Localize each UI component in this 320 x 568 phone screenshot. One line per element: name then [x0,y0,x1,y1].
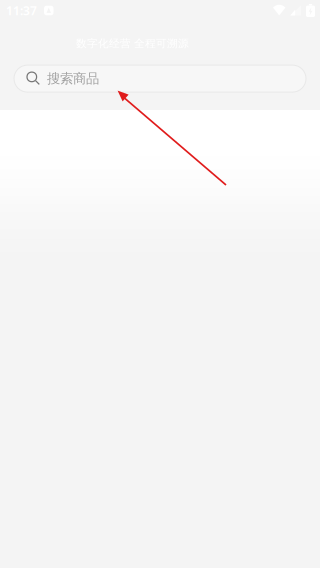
staticText: 搜索商品 [47,70,99,87]
staticText: 11:37 [6,2,37,18]
button[interactable]: 搜索商品 [14,65,306,92]
